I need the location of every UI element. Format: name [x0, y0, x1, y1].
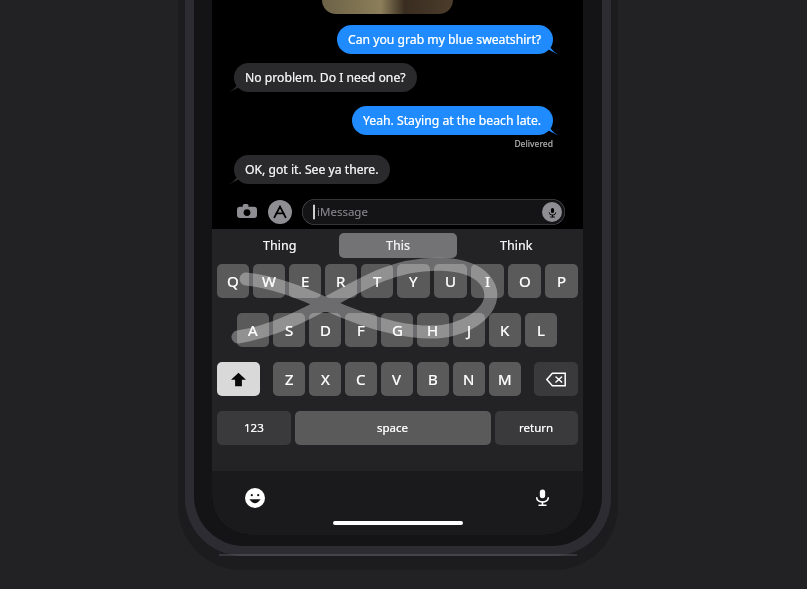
button[interactable]: E — [289, 264, 321, 298]
button[interactable]: N — [453, 362, 485, 396]
staticText: O — [519, 271, 531, 291]
button[interactable]: Camera — [236, 201, 258, 223]
button[interactable]: space — [295, 411, 491, 445]
staticText: L — [537, 320, 545, 340]
button[interactable]: O — [508, 264, 541, 298]
button[interactable]: Q — [217, 264, 249, 298]
button[interactable]: Thing — [220, 233, 339, 258]
staticText: Z — [285, 369, 294, 389]
staticText: B — [428, 369, 438, 389]
staticText: Think — [500, 237, 533, 254]
button[interactable]: No problem. Do I need one? — [234, 63, 417, 92]
button[interactable]: return — [495, 411, 578, 445]
staticText: Delivered — [212, 138, 553, 150]
staticText: W — [262, 271, 276, 291]
button[interactable]: J — [453, 313, 485, 347]
button[interactable]: Z — [273, 362, 305, 396]
button[interactable]: Dictation — [531, 486, 553, 508]
staticText: P — [557, 271, 567, 291]
staticText: return — [519, 420, 554, 436]
staticText: Can you grab my blue sweatshirt? — [348, 31, 542, 48]
staticText: H — [427, 320, 439, 340]
button[interactable]: This — [339, 233, 457, 258]
staticText: Y — [409, 271, 418, 291]
button[interactable]: B — [417, 362, 449, 396]
button[interactable]: H — [417, 313, 449, 347]
button[interactable]: Emoji — [244, 487, 266, 509]
button[interactable]: Backspace — [534, 362, 578, 396]
button[interactable]: W — [253, 264, 285, 298]
staticText: C — [356, 369, 366, 389]
staticText: G — [392, 320, 403, 340]
button[interactable]: P — [545, 264, 578, 298]
button[interactable]: Yeah. Staying at the beach late. — [352, 106, 553, 135]
staticText: V — [392, 369, 402, 389]
button[interactable]: A — [237, 313, 269, 347]
button[interactable]: Think — [457, 233, 575, 258]
staticText: U — [445, 271, 456, 291]
button[interactable]: D — [309, 313, 341, 347]
button[interactable]: I — [471, 264, 504, 298]
button[interactable]: R — [325, 264, 357, 298]
staticText: K — [500, 320, 510, 340]
button[interactable]: V — [381, 362, 413, 396]
button[interactable]: OK, got it. See ya there. — [234, 155, 390, 184]
button[interactable]: C — [345, 362, 377, 396]
staticText: Thing — [263, 237, 297, 254]
button[interactable]: G — [381, 313, 413, 347]
button[interactable]: Can you grab my blue sweatshirt? — [337, 25, 553, 54]
button[interactable]: iMessage — [302, 199, 565, 225]
button[interactable]: M — [489, 362, 521, 396]
staticText: F — [357, 320, 365, 340]
button[interactable]: Shift — [217, 362, 260, 396]
button[interactable] — [322, 0, 453, 14]
staticText: M — [498, 369, 512, 389]
staticText: iMessage — [317, 204, 368, 220]
staticText: This — [386, 237, 410, 254]
staticText: N — [463, 369, 475, 389]
button[interactable]: Y — [397, 264, 430, 298]
button[interactable]: Dictate — [542, 202, 562, 222]
button[interactable]: 123 — [217, 411, 291, 445]
staticText: Yeah. Staying at the beach late. — [363, 112, 542, 129]
staticText: space — [377, 420, 409, 436]
staticText: S — [285, 320, 294, 340]
staticText: I — [485, 271, 491, 291]
staticText: D — [320, 320, 331, 340]
staticText: No problem. Do I need one? — [245, 69, 406, 86]
staticText: R — [336, 271, 346, 291]
button[interactable]: F — [345, 313, 377, 347]
button[interactable]: X — [309, 362, 341, 396]
button[interactable]: T — [361, 264, 393, 298]
staticText: T — [373, 271, 382, 291]
button[interactable]: K — [489, 313, 521, 347]
staticText: J — [467, 320, 472, 340]
button[interactable]: U — [434, 264, 467, 298]
staticText: A — [248, 320, 258, 340]
staticText: 123 — [244, 420, 264, 436]
button[interactable]: App Store — [268, 200, 292, 224]
button[interactable]: L — [525, 313, 557, 347]
button[interactable]: S — [273, 313, 305, 347]
staticText: E — [301, 271, 310, 291]
staticText: Q — [227, 271, 239, 291]
staticText: X — [321, 369, 330, 389]
staticText: OK, got it. See ya there. — [245, 161, 379, 178]
